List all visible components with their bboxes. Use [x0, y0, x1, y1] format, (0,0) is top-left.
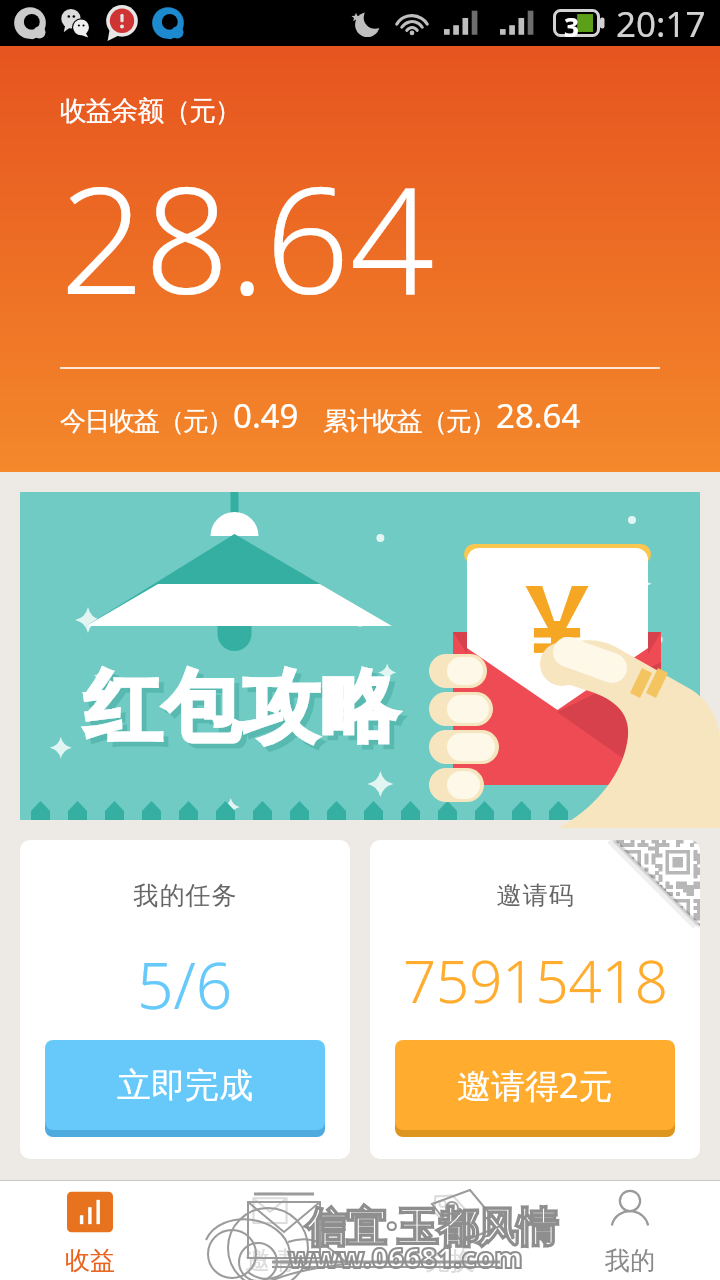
staticText: 我的 — [605, 1245, 655, 1276]
button[interactable]: 收益 — [0, 1180, 180, 1280]
button[interactable]: 邀请得2元 — [395, 1040, 675, 1130]
button[interactable]: 红包攻略 — [20, 492, 700, 820]
staticText: www.06681.com — [288, 1238, 523, 1276]
staticText: 3 — [564, 9, 579, 37]
staticText: 28.64 — [60, 136, 435, 338]
staticText: 收益余额（元） — [60, 94, 241, 128]
staticText: 红包攻略 — [83, 659, 399, 757]
staticText: 我的任务 — [133, 880, 237, 911]
button[interactable]: 立即完成 — [45, 1040, 325, 1130]
staticText: 5/6 — [137, 941, 233, 1028]
staticText: 邀请 — [245, 1245, 295, 1276]
staticText: 今日收益（元） — [60, 405, 233, 438]
staticText: 兑换 — [425, 1245, 475, 1276]
staticText: 0.49 — [233, 393, 299, 438]
staticText: 28.64 — [496, 393, 581, 438]
button[interactable]: 我的任务 — [20, 840, 350, 1159]
button[interactable]: 邀请 — [180, 1180, 360, 1280]
staticText: 累计收益（元） — [323, 405, 496, 438]
staticText: 邀请得2元 — [457, 1062, 613, 1108]
staticText: 收益 — [65, 1245, 115, 1276]
staticText: 邀请码 — [496, 880, 574, 911]
staticText: 75915418 — [403, 941, 668, 1020]
staticText: 20:17 — [616, 0, 706, 46]
button[interactable]: 兑换 — [360, 1180, 540, 1280]
staticText: 立即完成 — [117, 1064, 253, 1107]
staticText: 信宜·玉都风情 — [306, 1198, 558, 1253]
button[interactable]: 邀请码 — [370, 840, 700, 1159]
button[interactable]: 我的 — [540, 1180, 720, 1280]
staticText: 红包攻略 — [88, 664, 404, 762]
